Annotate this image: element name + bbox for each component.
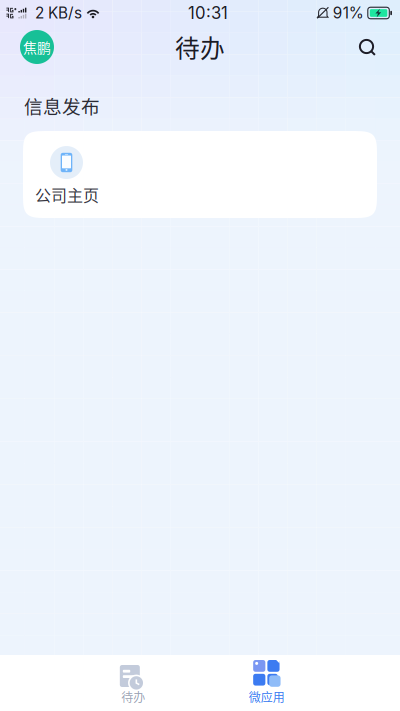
- staticText: 微应用: [249, 688, 285, 705]
- staticText: 焦鹏: [23, 37, 51, 57]
- staticText: 公司主页: [35, 183, 99, 206]
- staticText: 待办: [175, 29, 225, 65]
- staticText: 2 KB/s: [35, 4, 82, 22]
- staticText: 10:31: [188, 3, 228, 23]
- staticText: 91%: [333, 4, 364, 22]
- button[interactable]: 公司主页: [23, 131, 377, 218]
- button[interactable]: Profile: [20, 30, 54, 64]
- button[interactable]: 待办: [83, 655, 183, 711]
- button[interactable]: 微应用: [217, 655, 317, 711]
- button[interactable]: Search: [351, 31, 383, 63]
- staticText: 信息发布: [24, 92, 100, 119]
- staticText: 待办: [121, 688, 145, 705]
